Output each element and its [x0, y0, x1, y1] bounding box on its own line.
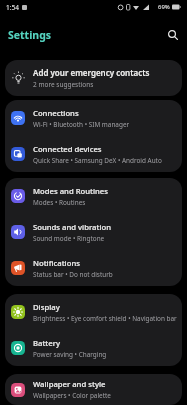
staticText: Connections — [33, 108, 79, 118]
staticText: Sounds and vibration — [33, 222, 111, 232]
button[interactable]: Modes and Routines — [5, 178, 182, 214]
staticText: Wallpaper and style — [33, 379, 106, 389]
staticText: 69% — [158, 3, 170, 11]
button[interactable]: Connections — [5, 100, 182, 136]
button[interactable]: Add your emergency contacts — [5, 60, 182, 96]
staticText: Brightness • Eye comfort shield • Naviga… — [33, 314, 177, 323]
button[interactable]: Display — [5, 294, 182, 330]
staticText: Modes and Routines — [33, 186, 109, 196]
staticText: Notifications — [33, 258, 80, 268]
staticText: 2 more suggestions — [33, 80, 94, 89]
staticText: Status bar • Do not disturb — [33, 270, 113, 279]
staticText: Modes • Routines — [33, 198, 86, 207]
staticText: 1:54 — [6, 3, 19, 12]
button[interactable]: Sounds and vibration — [5, 214, 182, 250]
staticText: Power saving • Charging — [33, 350, 107, 359]
button[interactable]: Wallpaper and style — [5, 374, 182, 405]
staticText: Wi-Fi • Bluetooth • SIM manager — [33, 120, 130, 129]
button[interactable]: Battery — [5, 330, 182, 366]
staticText: Sound mode • Ringtone — [33, 234, 105, 243]
staticText: Battery — [33, 338, 61, 348]
button[interactable]: Notifications — [5, 250, 182, 286]
staticText: Add your emergency contacts — [33, 67, 150, 78]
staticText: Quick Share • Samsung DeX • Android Auto — [33, 156, 162, 165]
staticText: Display — [33, 302, 60, 312]
button[interactable] — [167, 29, 179, 41]
staticText: Settings — [8, 28, 52, 42]
button[interactable]: Connected devices — [5, 136, 182, 172]
staticText: Wallpapers • Color palette — [33, 391, 111, 400]
staticText: Connected devices — [33, 144, 102, 154]
